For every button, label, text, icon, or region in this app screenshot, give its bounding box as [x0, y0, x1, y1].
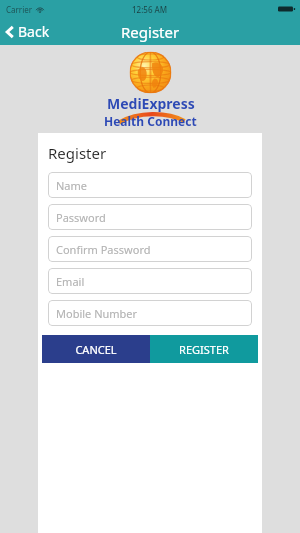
button[interactable]: Back: [0, 18, 58, 45]
staticText: Health Connect: [104, 113, 197, 129]
staticText: Back: [18, 22, 50, 41]
staticText: 12:56 AM: [132, 4, 168, 15]
staticText: Email: [56, 274, 85, 289]
button[interactable]: Mobile Number: [48, 300, 252, 326]
staticText: Confirm Password: [56, 242, 151, 257]
staticText: REGISTER: [179, 342, 229, 357]
button[interactable]: Confirm Password: [48, 236, 252, 262]
staticText: Password: [56, 210, 106, 225]
staticText: MediExpress: [107, 94, 195, 113]
button[interactable]: Password: [48, 204, 252, 230]
button[interactable]: CANCEL: [42, 335, 150, 363]
button[interactable]: Email: [48, 268, 252, 294]
staticText: Carrier: [6, 4, 33, 15]
staticText: Mobile Number: [56, 306, 138, 321]
staticText: Name: [56, 178, 88, 193]
button[interactable]: REGISTER: [150, 335, 258, 363]
staticText: Register: [48, 143, 107, 163]
button[interactable]: Name: [48, 172, 252, 198]
staticText: CANCEL: [75, 342, 117, 357]
staticText: Register: [121, 22, 180, 42]
